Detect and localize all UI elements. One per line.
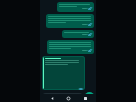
button[interactable]	[47, 40, 94, 54]
button[interactable]: Record voice message	[85, 92, 94, 101]
button[interactable]	[42, 93, 83, 101]
button[interactable]: Back	[47, 94, 57, 102]
button[interactable]	[57, 2, 94, 12]
button[interactable]: Home	[63, 94, 73, 102]
button[interactable]: Recent apps	[80, 94, 90, 102]
button[interactable]	[62, 30, 94, 38]
button[interactable]	[46, 14, 94, 28]
button[interactable]	[42, 56, 85, 90]
